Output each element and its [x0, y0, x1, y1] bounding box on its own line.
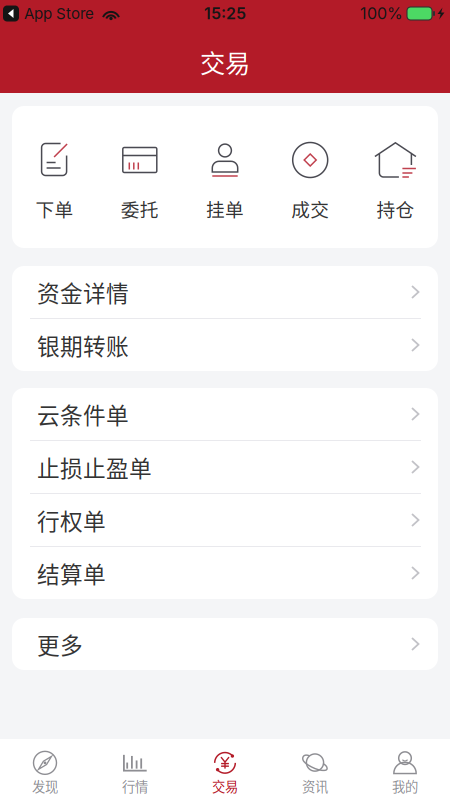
staticText: 100%	[360, 4, 403, 23]
staticText: 资金详情	[37, 276, 129, 308]
button[interactable]: 银期转账	[12, 319, 438, 371]
button[interactable]: 我的	[360, 739, 450, 800]
button[interactable]: Back to App Store	[3, 5, 19, 21]
staticText: 挂单	[206, 195, 244, 222]
staticText: 发现	[32, 776, 58, 796]
staticText: 云条件单	[37, 398, 129, 430]
button[interactable]: 成交	[268, 106, 353, 248]
staticText: 成交	[291, 195, 329, 222]
button[interactable]: 行权单	[12, 494, 438, 546]
button[interactable]: 止损止盈单	[12, 441, 438, 493]
staticText: 下单	[36, 195, 74, 222]
button[interactable]: 挂单	[182, 106, 268, 248]
staticText: 资讯	[302, 776, 328, 796]
staticText: 委托	[121, 195, 159, 222]
button[interactable]: 交易	[180, 739, 270, 800]
staticText: 银期转账	[37, 329, 129, 361]
staticText: 交易	[200, 43, 250, 80]
button[interactable]: 资金详情	[12, 266, 438, 318]
staticText: 持仓	[376, 195, 414, 222]
button[interactable]: 更多	[12, 618, 438, 670]
staticText: 行权单	[37, 504, 106, 536]
staticText: 更多	[37, 628, 83, 660]
button[interactable]: 持仓	[353, 106, 438, 248]
button[interactable]: 下单	[12, 106, 97, 248]
button[interactable]: 委托	[97, 106, 182, 248]
button[interactable]: 发现	[0, 739, 90, 800]
button[interactable]: 资讯	[270, 739, 360, 800]
button[interactable]: 行情	[90, 739, 180, 800]
staticText: 结算单	[37, 557, 106, 589]
staticText: 交易	[212, 776, 238, 796]
button[interactable]: 云条件单	[12, 388, 438, 440]
button[interactable]: 结算单	[12, 547, 438, 599]
staticText: 止损止盈单	[37, 451, 152, 483]
staticText: 15:25	[204, 4, 246, 23]
staticText: 行情	[122, 776, 148, 796]
staticText: App Store	[24, 4, 94, 23]
staticText: 我的	[392, 776, 418, 796]
